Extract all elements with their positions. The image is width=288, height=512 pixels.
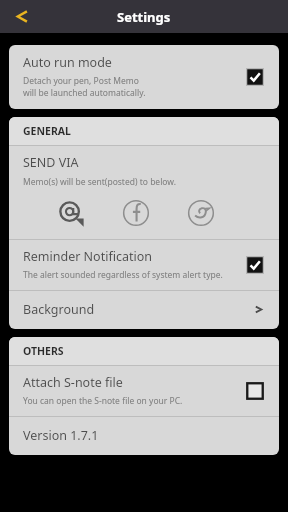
button[interactable]: Auto run mode (9, 45, 279, 109)
staticText: Auto run mode (23, 54, 112, 71)
staticText: Attach S-note file (23, 374, 123, 391)
button[interactable]: Checked (241, 63, 269, 91)
button[interactable]: Checked (241, 251, 269, 279)
button[interactable]: Reminder Notification (9, 240, 279, 290)
staticText: SEND VIA (23, 154, 79, 171)
button[interactable]: Attach S-note file (9, 366, 279, 416)
staticText: Memo(s) will be sent(posted) to below. (23, 176, 176, 188)
button[interactable]: Send via Twitter (184, 196, 218, 230)
button[interactable]: Send via Facebook (119, 196, 153, 230)
button[interactable]: Background (9, 291, 279, 329)
staticText: Settings (117, 8, 171, 26)
staticText: The alert sounded regardless of system a… (23, 269, 223, 281)
staticText: Detach your pen, Post Memo will be launc… (23, 75, 146, 99)
button[interactable]: Unchecked (241, 377, 269, 405)
staticText: You can open the S-note file on your PC. (23, 395, 183, 407)
button[interactable]: Send via email (54, 196, 88, 230)
staticText: Reminder Notification (23, 248, 152, 265)
staticText: OTHERS (23, 344, 64, 358)
staticText: Version 1.7.1 (23, 427, 99, 444)
staticText: GENERAL (23, 124, 71, 138)
button[interactable]: Version 1.7.1 (9, 417, 279, 455)
button[interactable]: Back (0, 0, 44, 33)
staticText: Background (23, 301, 254, 318)
